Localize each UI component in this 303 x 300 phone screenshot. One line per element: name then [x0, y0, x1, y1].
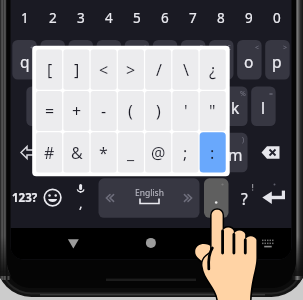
button[interactable]: [123, 0, 151, 34]
button[interactable]: [165, 87, 193, 127]
button[interactable]: [11, 40, 39, 80]
button[interactable]: [179, 0, 207, 34]
button[interactable]: [221, 133, 249, 173]
button[interactable]: [207, 40, 235, 80]
button[interactable]: [137, 133, 165, 173]
button[interactable]: Space: [99, 178, 200, 218]
staticText: *: [157, 89, 161, 99]
button[interactable]: [67, 40, 95, 80]
staticText: +: [30, 43, 35, 53]
button[interactable]: #: [36, 132, 63, 173]
button[interactable]: [95, 0, 123, 34]
button[interactable]: ': [172, 90, 199, 131]
staticText: £: [227, 43, 232, 53]
button[interactable]: ": [199, 90, 226, 131]
button[interactable]: @: [145, 132, 172, 173]
button[interactable]: =: [36, 90, 63, 131]
staticText: 3: [77, 9, 85, 27]
staticText: >: [126, 59, 136, 81]
button[interactable]: +: [63, 90, 90, 131]
button[interactable]: [39, 0, 67, 34]
button[interactable]: Emoji: [40, 178, 66, 218]
button[interactable]: Shift: [14, 133, 42, 173]
button[interactable]: [263, 0, 291, 34]
staticText: &: [71, 142, 83, 164]
staticText: /: [143, 43, 146, 53]
staticText: #: [44, 142, 55, 164]
staticText: o: [244, 51, 254, 72]
button[interactable]: [151, 40, 179, 80]
button[interactable]: ): [145, 90, 172, 131]
staticText: ¿: [209, 59, 216, 81]
button[interactable]: Period: [204, 178, 229, 218]
staticText: n: [202, 144, 212, 165]
button[interactable]: [151, 0, 179, 34]
button[interactable]: ;: [172, 132, 199, 173]
staticText: 4: [105, 9, 113, 27]
staticText: ": [209, 100, 216, 122]
button[interactable]: <: [90, 49, 117, 90]
staticText: t: [134, 51, 140, 72]
button[interactable]: (: [117, 90, 144, 131]
button[interactable]: :: [199, 132, 226, 173]
button[interactable]: [109, 87, 137, 127]
staticText: l: [261, 97, 265, 118]
button[interactable]: \: [172, 49, 199, 90]
button[interactable]: [25, 87, 53, 127]
staticText: <: [99, 59, 109, 81]
button[interactable]: Switch keyboard: [256, 232, 278, 254]
button[interactable]: [11, 0, 39, 34]
button[interactable]: [249, 87, 277, 127]
button[interactable]: _: [117, 132, 144, 173]
button[interactable]: Symbols: [12, 178, 38, 218]
button[interactable]: [81, 87, 109, 127]
staticText: *: [99, 142, 108, 164]
staticText: ): [242, 135, 245, 145]
button[interactable]: [207, 0, 235, 34]
button[interactable]: [235, 40, 263, 80]
button[interactable]: [193, 87, 221, 127]
staticText: ': [184, 100, 188, 122]
button[interactable]: [: [36, 49, 63, 90]
button[interactable]: Hide keyboard: [62, 232, 84, 254]
button[interactable]: [137, 87, 165, 127]
staticText: &: [127, 89, 133, 99]
button[interactable]: *: [90, 132, 117, 173]
button[interactable]: &: [63, 132, 90, 173]
button[interactable]: Voice input: [68, 178, 94, 218]
button[interactable]: [109, 133, 137, 173]
button[interactable]: [53, 133, 81, 173]
button[interactable]: [39, 40, 67, 80]
staticText: a: [35, 97, 44, 118]
staticText: 7: [189, 9, 197, 27]
button[interactable]: [221, 87, 249, 127]
button[interactable]: [235, 0, 263, 34]
button[interactable]: -: [90, 90, 117, 131]
button[interactable]: ¿: [199, 49, 226, 90]
button[interactable]: Backspace: [256, 133, 286, 173]
staticText: $: [100, 89, 105, 99]
button[interactable]: Question mark: [231, 178, 257, 218]
button[interactable]: [95, 40, 123, 80]
button[interactable]: Home: [140, 232, 162, 254]
button[interactable]: [53, 87, 81, 127]
button[interactable]: [263, 40, 291, 80]
staticText: d: [90, 97, 100, 118]
button[interactable]: [81, 133, 109, 173]
button[interactable]: [165, 133, 193, 173]
button[interactable]: [193, 133, 221, 173]
button[interactable]: /: [145, 49, 172, 90]
staticText: w: [47, 51, 60, 72]
button[interactable]: ]: [63, 49, 90, 90]
button[interactable]: [123, 40, 151, 80]
button[interactable]: >: [117, 49, 144, 90]
button[interactable]: [67, 0, 95, 34]
button[interactable]: [179, 40, 207, 80]
button[interactable]: Enter: [259, 178, 289, 218]
